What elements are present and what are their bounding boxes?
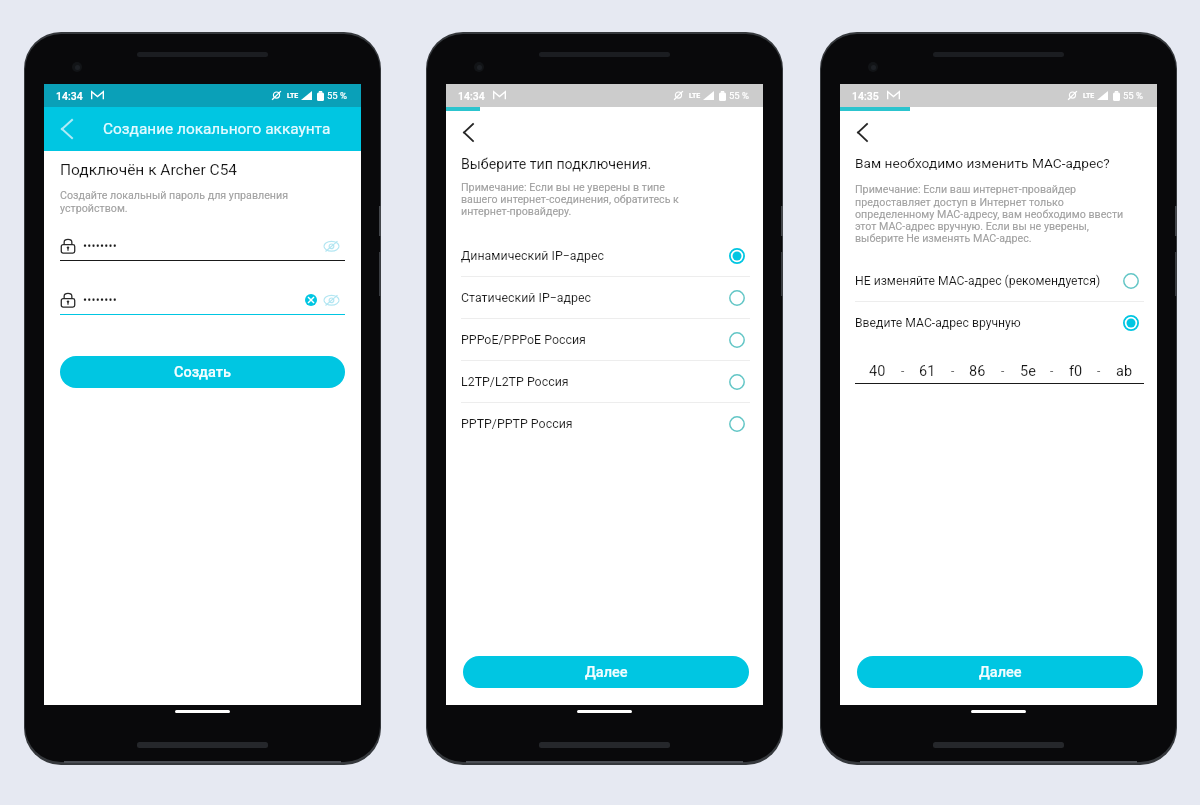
button[interactable]: Back	[458, 123, 478, 141]
button[interactable]: Далее	[857, 656, 1143, 688]
button[interactable]: Select option	[1118, 268, 1144, 294]
staticText: LTE	[287, 92, 299, 100]
staticText: PPTP/PPTP Россия	[461, 416, 573, 431]
button[interactable]: Select option	[1118, 310, 1144, 336]
staticText: 5e	[1020, 363, 1036, 380]
staticText: Выберите тип подключения.	[461, 156, 652, 173]
staticText: 55 %	[1123, 90, 1143, 101]
staticText: LTE	[1083, 92, 1095, 100]
staticText: Подключён к Archer C54	[60, 161, 238, 179]
button[interactable]: Clear	[305, 294, 317, 306]
staticText: L2TP/L2TP Россия	[461, 374, 569, 389]
button[interactable]: Select option	[724, 369, 750, 395]
staticText: Введите MAC-адрес вручную	[855, 316, 1021, 330]
button[interactable]: L2TP/L2TP Россия	[461, 361, 750, 402]
staticText: 14:35	[852, 90, 879, 102]
button[interactable]: PPPoE/PPPoE Россия	[461, 319, 750, 360]
staticText: PPPoE/PPPoE Россия	[461, 332, 586, 347]
staticText: Далее	[979, 664, 1022, 681]
staticText: 86	[969, 363, 986, 380]
button[interactable]: Select option	[724, 243, 750, 269]
staticText: ab	[1116, 363, 1133, 380]
staticText: Примечание: Если вы не уверены в типе ва…	[461, 181, 679, 217]
button[interactable]: Show password	[321, 290, 341, 310]
staticText: 14:34	[458, 90, 485, 102]
staticText: f0	[1069, 363, 1083, 380]
button[interactable]: Show password	[321, 236, 341, 256]
staticText: 14:34	[56, 90, 83, 102]
button[interactable]: Select option	[724, 285, 750, 311]
button[interactable]: Select option	[724, 327, 750, 353]
staticText: Статический IP−адрес	[461, 290, 592, 305]
button[interactable]: Динамический IP−адрес	[461, 235, 750, 276]
staticText: Создать	[174, 364, 231, 381]
staticText: Динамический IP−адрес	[461, 248, 605, 263]
button[interactable]: Далее	[463, 656, 749, 688]
staticText: Вам необходимо изменить MAC-адрес?	[855, 155, 1110, 171]
staticText: 55 %	[327, 90, 347, 101]
staticText: -	[1097, 364, 1101, 378]
staticText: Создание локального аккаунта	[103, 120, 331, 138]
button[interactable]: PPTP/PPTP Россия	[461, 403, 750, 444]
staticText: 61	[919, 363, 936, 380]
staticText: -	[1050, 364, 1054, 378]
staticText: 40	[869, 363, 886, 380]
staticText: LTE	[689, 92, 701, 100]
staticText: НЕ изменяйте MAC-адрес (рекомендуется)	[855, 274, 1101, 288]
staticText: ••••••••	[83, 239, 117, 253]
staticText: 55 %	[729, 90, 749, 101]
staticText: -	[951, 364, 955, 378]
button[interactable]: Статический IP−адрес	[461, 277, 750, 318]
staticText: -	[901, 364, 905, 378]
button[interactable]: Создать	[60, 356, 345, 388]
staticText: Примечание: Если ваш интернет-провайдер …	[855, 183, 1124, 244]
button[interactable]: Back	[53, 115, 81, 143]
staticText: Далее	[585, 664, 628, 681]
staticText: ••••••••	[83, 293, 117, 307]
button[interactable]: Select option	[724, 411, 750, 437]
staticText: Создайте локальный пароль для управления…	[60, 189, 289, 215]
staticText: -	[1001, 364, 1005, 378]
button[interactable]: Введите MAC-адрес вручную	[855, 302, 1144, 343]
button[interactable]: НЕ изменяйте MAC-адрес (рекомендуется)	[855, 260, 1144, 301]
button[interactable]: Back	[852, 123, 872, 141]
